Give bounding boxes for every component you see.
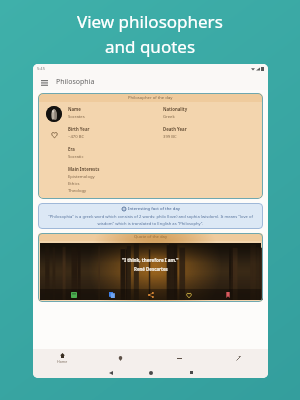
staticText: ~470 BC <box>68 134 85 140</box>
staticText: Philosopher of the day <box>128 95 173 101</box>
staticText: Nationality <box>163 106 188 112</box>
button[interactable]: Open in browser <box>69 290 79 300</box>
button[interactable]: Copy quote <box>107 290 117 300</box>
staticText: Theology <box>68 188 87 194</box>
button[interactable]: Home <box>145 367 157 378</box>
staticText: and quotes <box>105 35 196 58</box>
staticText: Greek <box>163 114 175 120</box>
staticText: Epistemology <box>68 174 95 180</box>
staticText: Era <box>68 146 75 152</box>
button[interactable]: Open navigation menu <box>38 76 50 88</box>
button[interactable]: Quote of the day <box>38 233 263 302</box>
button[interactable]: Philosopher portrait <box>46 106 62 122</box>
button[interactable]: Philosopher of the day <box>38 93 263 199</box>
button[interactable]: Philosophers <box>91 349 150 367</box>
staticText: 399 BC <box>163 134 177 140</box>
staticText: Interesting fact of the day <box>128 206 180 212</box>
staticText: Birth Year <box>68 126 90 132</box>
button[interactable]: Home <box>33 349 91 367</box>
staticText: Socratic <box>68 154 84 160</box>
button[interactable]: Share quote <box>146 290 156 300</box>
staticText: 5:45 <box>37 66 45 71</box>
staticText: Name <box>68 106 81 112</box>
staticText: Home <box>57 359 68 364</box>
button[interactable]: Add to favourites <box>49 129 60 140</box>
button[interactable]: Back <box>105 367 117 378</box>
staticText: Main Interests <box>68 166 100 172</box>
button[interactable]: Recent apps <box>185 367 197 378</box>
staticText: René Descartes <box>134 266 168 272</box>
staticText: Ethics <box>68 181 80 187</box>
button[interactable]: Save image <box>223 290 233 300</box>
staticText: Philosophia <box>56 77 95 87</box>
staticText: "I think, therefore I am." <box>122 257 179 263</box>
staticText: View philosophers <box>77 10 223 33</box>
button[interactable]: More <box>209 349 268 367</box>
button[interactable]: Favourite quote <box>184 290 194 300</box>
staticText: "Philosophia" is a greek word which cons… <box>44 214 257 226</box>
staticText: Quote of the day <box>134 234 168 240</box>
staticText: Socrates <box>68 114 85 120</box>
button[interactable]: Interesting fact of the day <box>38 203 263 229</box>
button[interactable]: Quotes <box>150 349 209 367</box>
staticText: Death Year <box>163 126 187 132</box>
